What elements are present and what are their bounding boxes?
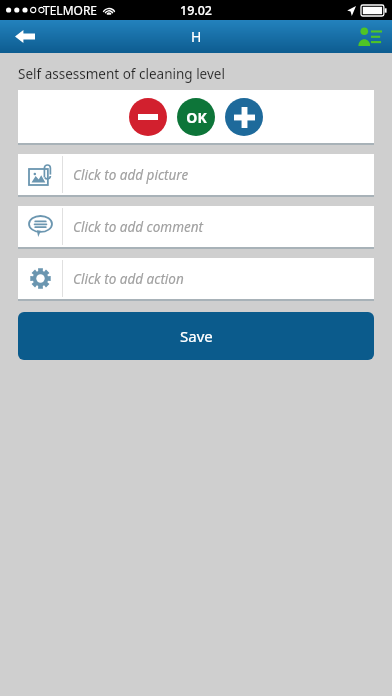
button[interactable]: Add action [18, 258, 374, 299]
button[interactable]: Add comment [18, 206, 374, 247]
button[interactable]: Rate OK [177, 98, 215, 136]
staticText: OK [186, 108, 207, 127]
staticText: 19.02 [180, 2, 213, 19]
button[interactable]: Add picture [18, 154, 374, 195]
button[interactable]: Contacts [348, 20, 392, 53]
button[interactable]: Back [0, 20, 50, 53]
staticText: Click to add picture [73, 166, 189, 184]
staticText: Save [180, 326, 213, 346]
button[interactable]: Rate poor [129, 98, 167, 136]
staticText: Click to add comment [73, 218, 203, 236]
staticText: Self assessment of cleaning level [18, 65, 225, 83]
button[interactable]: Save [18, 312, 374, 360]
button[interactable]: Rate good [225, 98, 263, 136]
staticText: Click to add action [73, 270, 184, 288]
staticText: H [191, 27, 202, 46]
staticText: TELMORE [43, 2, 98, 18]
